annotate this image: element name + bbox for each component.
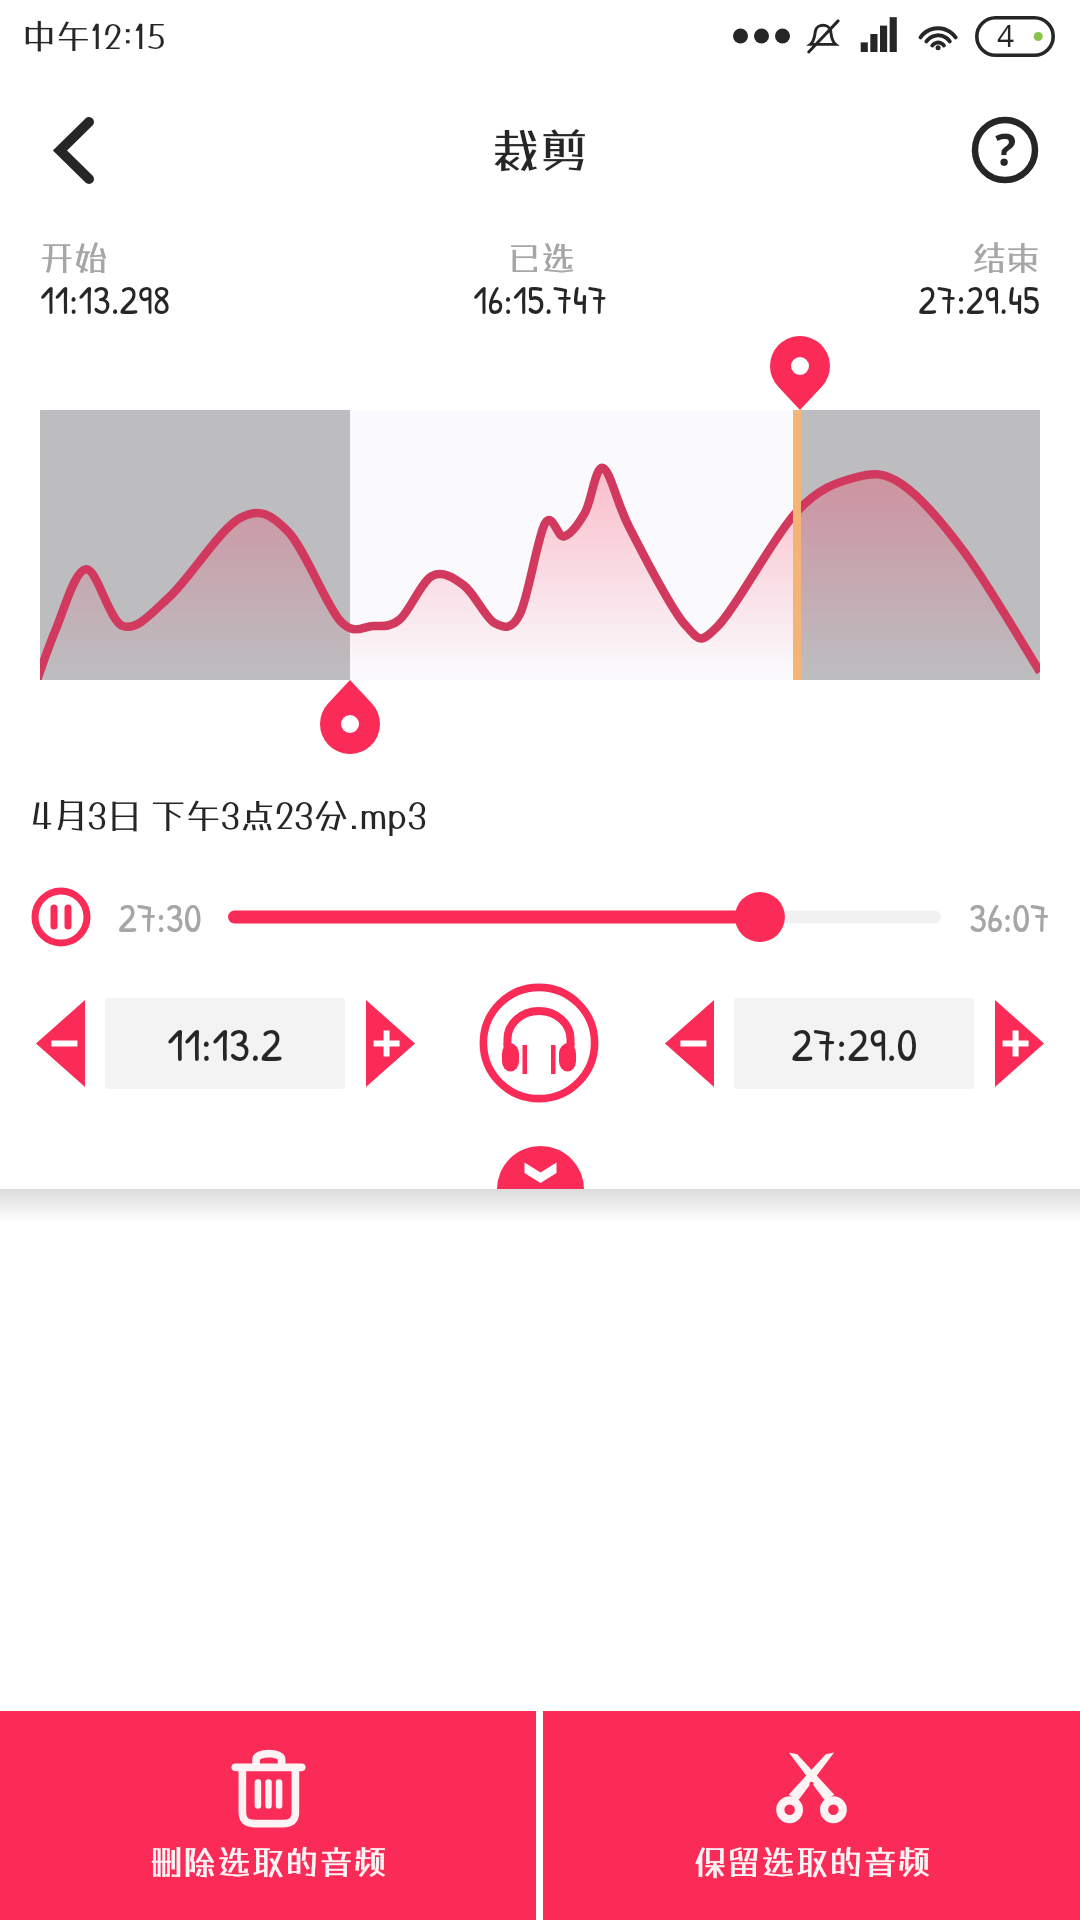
button[interactable]: Preview xyxy=(476,988,602,1098)
staticText: 36:07 xyxy=(969,890,1050,944)
staticText: 11:13.2 xyxy=(167,1012,283,1076)
staticText: 删除选取的音频 xyxy=(149,1842,387,1882)
staticText: 已选 xyxy=(507,238,575,278)
staticText: 27:29.0 xyxy=(791,1012,918,1076)
staticText: 结束 xyxy=(972,238,1040,278)
button[interactable]: 27:29.0 xyxy=(734,998,974,1089)
button[interactable]: Decrease xyxy=(36,993,85,1093)
button[interactable]: 保留选取的音频 xyxy=(543,1711,1080,1920)
staticText: 4 xyxy=(997,15,1015,56)
staticText: 11:13.298 xyxy=(40,272,171,326)
button[interactable]: 删除选取的音频 xyxy=(0,1711,536,1920)
staticText: ? xyxy=(995,119,1016,179)
staticText: 裁剪 xyxy=(492,122,589,179)
staticText: 中午12:15 xyxy=(22,16,166,56)
staticText: 27:29.45 xyxy=(918,272,1040,326)
button[interactable]: Collapse xyxy=(497,1146,584,1189)
button[interactable]: Increase xyxy=(995,993,1044,1093)
button[interactable]: Seek xyxy=(228,889,941,945)
button[interactable]: Back xyxy=(19,95,129,205)
staticText: 开始 xyxy=(40,238,108,278)
button[interactable]: Pause xyxy=(30,886,92,948)
staticText: 保留选取的音频 xyxy=(693,1842,931,1882)
button[interactable]: Decrease xyxy=(665,993,714,1093)
button[interactable]: 11:13.2 xyxy=(105,998,345,1089)
staticText: 16:15.747 xyxy=(473,272,608,326)
button[interactable]: Increase xyxy=(366,993,415,1093)
button[interactable]: Help xyxy=(950,95,1060,205)
staticText: 27:30 xyxy=(118,890,202,944)
staticText: 4月3日 下午3点23分.mp3 xyxy=(31,795,427,836)
